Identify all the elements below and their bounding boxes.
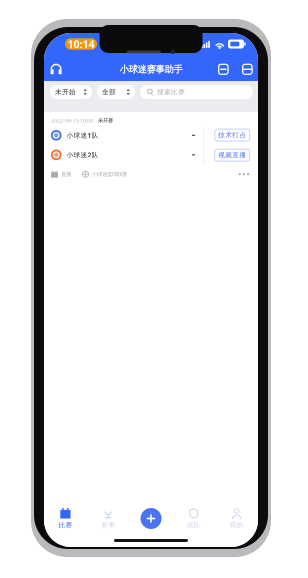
staticText: 全部 (102, 88, 116, 96)
staticText: 直播 (61, 171, 71, 177)
button[interactable]: 未开始 (50, 85, 92, 99)
button[interactable]: Listen (48, 58, 64, 81)
button[interactable]: 比赛 (44, 503, 87, 534)
staticText: 技术打点 (218, 131, 246, 139)
staticText: 小球迷赛事助手 (119, 64, 182, 75)
button[interactable]: 全部 (97, 85, 135, 99)
staticText: 赛事 (101, 521, 115, 529)
staticText: 搜索比赛 (157, 88, 185, 96)
button[interactable]: Menu (217, 59, 230, 79)
button[interactable]: 赛事 (87, 503, 130, 534)
button[interactable]: More options (235, 169, 253, 179)
staticText: 10:14 (67, 37, 94, 51)
staticText: 未开赛 (98, 117, 113, 124)
button[interactable]: 搜索比赛 (140, 85, 253, 99)
button[interactable]: 我的 (215, 503, 258, 534)
staticText: 小球迷篮球联赛 (92, 171, 127, 177)
button[interactable]: Close (241, 59, 254, 79)
staticText: 我的 (230, 521, 244, 529)
staticText: 比赛 (58, 521, 72, 529)
staticText: 小球迷1队 (66, 131, 98, 140)
button[interactable]: Create (130, 503, 172, 534)
staticText: 2022-04-15 10:00 (51, 117, 93, 124)
button[interactable]: 战队 (172, 503, 215, 534)
button[interactable]: 技术打点 (215, 129, 250, 141)
button[interactable]: 视频直播 (215, 149, 250, 161)
staticText: 战队 (187, 521, 201, 529)
staticText: 小球迷2队 (66, 150, 98, 159)
staticText: 未开始 (55, 88, 76, 96)
staticText: 视频直播 (218, 151, 246, 159)
